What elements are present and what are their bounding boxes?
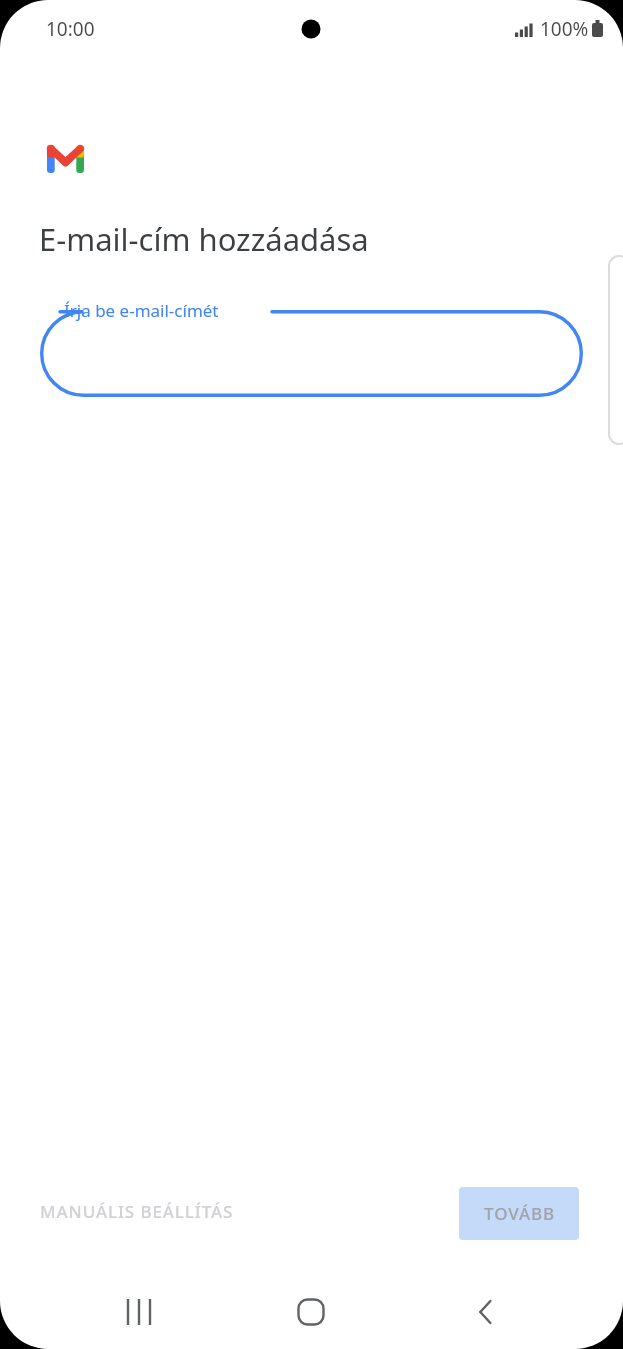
staticText: Írja be e-mail-címét	[64, 299, 219, 322]
staticText: 10:00	[46, 16, 95, 42]
staticText: MANUÁLIS BEÁLLÍTÁS	[40, 1200, 234, 1223]
button[interactable]: Back	[453, 1281, 521, 1343]
button[interactable]: Recents	[105, 1281, 173, 1343]
button[interactable]: Írja be e-mail-címét	[40, 310, 583, 397]
button[interactable]: TOVÁBB	[459, 1187, 579, 1240]
button[interactable]: Home	[277, 1281, 345, 1343]
staticText: TOVÁBB	[484, 1202, 555, 1225]
button[interactable]: MANUÁLIS BEÁLLÍTÁS	[40, 1200, 234, 1223]
staticText: 100%	[540, 16, 589, 42]
staticText: E-mail-cím hozzáadása	[39, 218, 369, 260]
